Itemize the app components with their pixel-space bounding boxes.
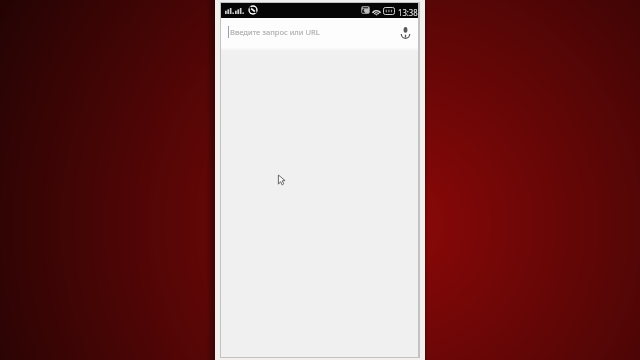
button[interactable]: Введите запрос или URL [221,18,396,48]
staticText: 13:38 [398,6,418,18]
staticText: Введите запрос или URL [230,27,320,37]
button[interactable]: Voice search [397,25,414,42]
